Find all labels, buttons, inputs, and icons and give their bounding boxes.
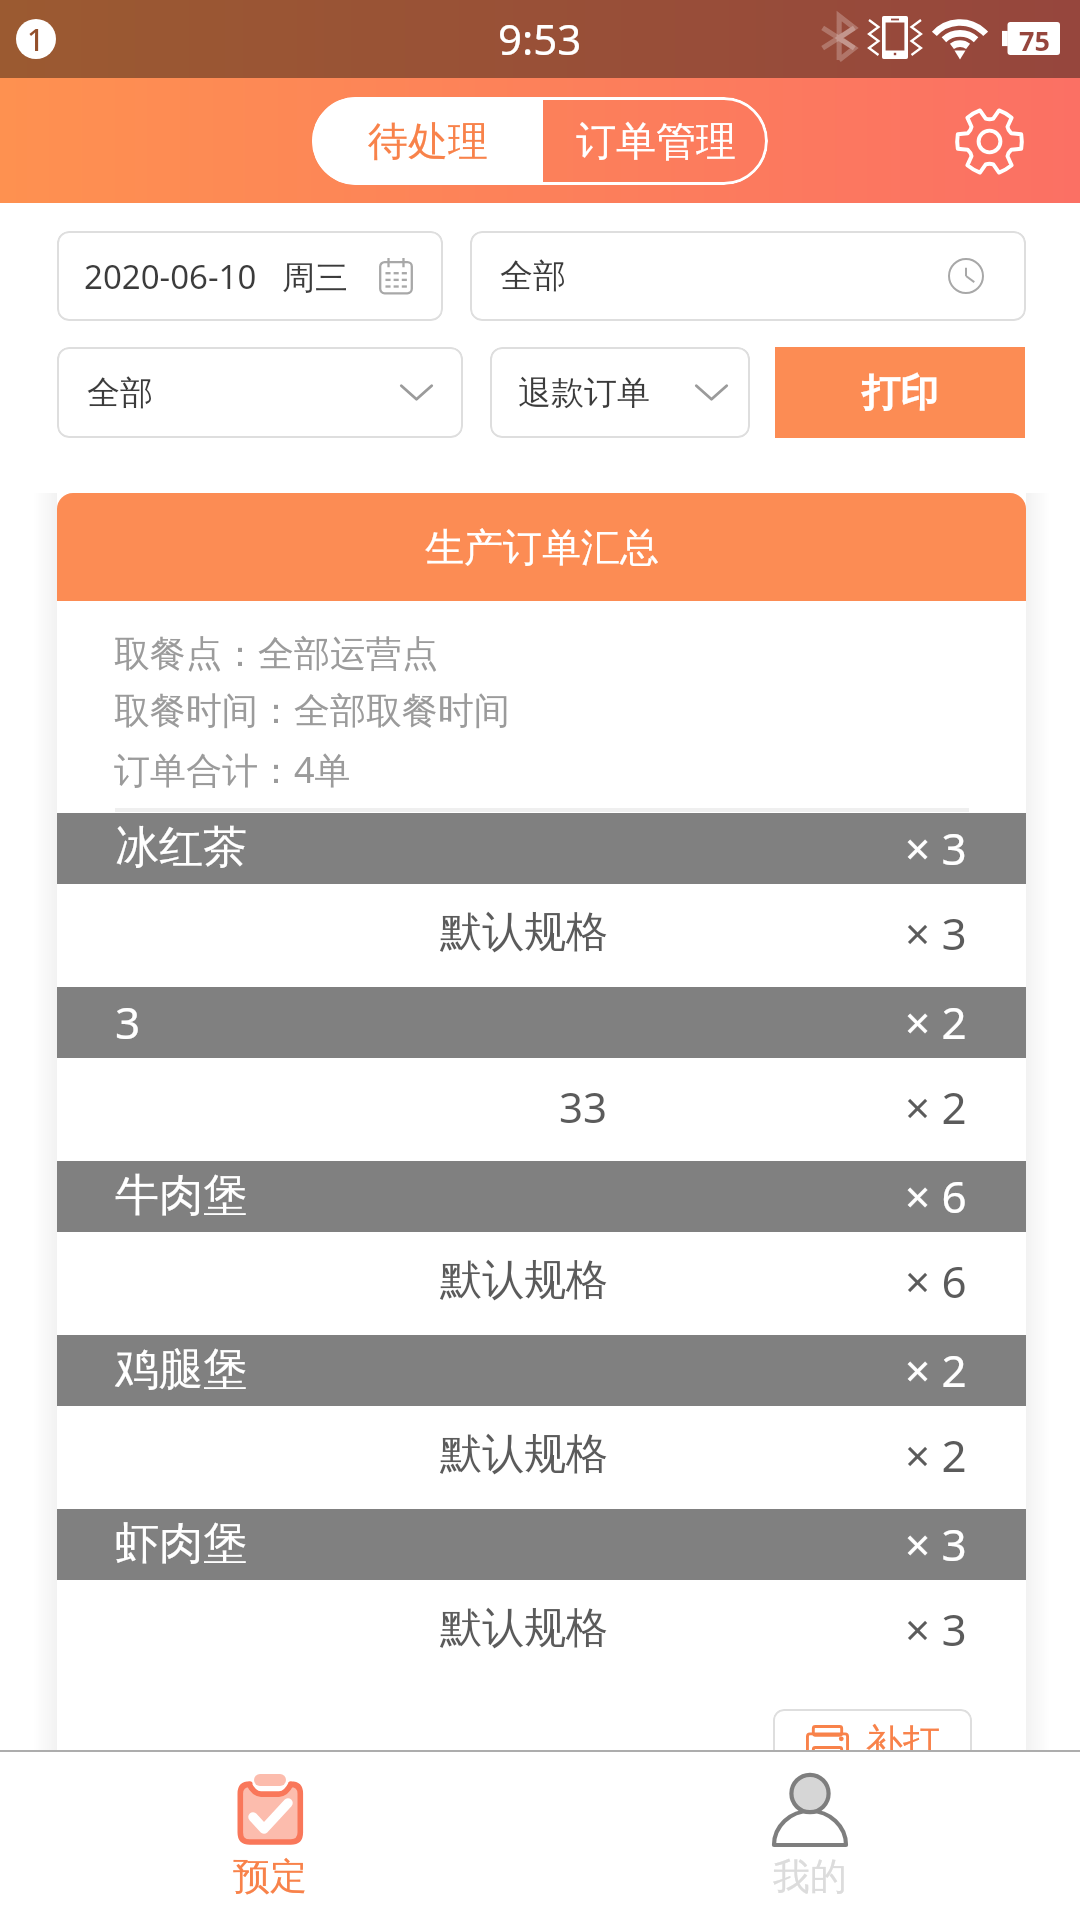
button[interactable]: 虾肉堡 xyxy=(57,1509,1026,1580)
staticText: 订单管理 xyxy=(576,116,736,166)
staticText: × 3 xyxy=(905,1514,967,1574)
button[interactable]: 补打 xyxy=(773,1709,972,1752)
staticText: × 2 xyxy=(905,1340,967,1400)
staticText: 3 xyxy=(115,992,141,1052)
staticText: 打印 xyxy=(862,369,938,417)
staticText: × 3 xyxy=(905,818,967,878)
staticText: × 3 xyxy=(905,1599,967,1659)
staticText: 牛肉堡 xyxy=(115,1168,247,1223)
staticText: × 6 xyxy=(905,1251,967,1311)
staticText: 全部 xyxy=(87,372,153,414)
button[interactable]: 订单管理 xyxy=(543,97,768,185)
staticText: 默认规格 xyxy=(440,1428,608,1481)
staticText: 订单合计：4单 xyxy=(114,745,351,794)
button[interactable]: 待处理 xyxy=(312,97,543,185)
staticText: × 2 xyxy=(905,1077,967,1137)
staticText: 我的 xyxy=(773,1853,847,1900)
button[interactable]: 预定 xyxy=(0,1752,540,1920)
staticText: 默认规格 xyxy=(440,906,608,959)
button[interactable]: 冰红茶 xyxy=(57,813,1026,884)
staticText: 全部 xyxy=(500,255,566,297)
staticText: × 6 xyxy=(905,1166,967,1226)
staticText: 鸡腿堡 xyxy=(115,1342,247,1397)
button[interactable]: 我的 xyxy=(540,1752,1080,1920)
staticText: 75 xyxy=(1019,22,1050,55)
staticText: 取餐点：全部运营点 xyxy=(114,631,438,676)
staticText: 默认规格 xyxy=(440,1254,608,1307)
staticText: 2020-06-10 周三 xyxy=(84,254,348,299)
staticText: × 2 xyxy=(905,992,967,1052)
staticText: 待处理 xyxy=(368,116,488,166)
staticText: 生产订单汇总 xyxy=(425,523,659,572)
staticText: 33 xyxy=(559,1078,608,1135)
button[interactable]: 3 xyxy=(57,987,1026,1058)
staticText: 取餐时间：全部取餐时间 xyxy=(114,688,510,733)
staticText: 9:53 xyxy=(498,10,582,67)
staticText: 冰红茶 xyxy=(115,820,247,875)
staticText: × 2 xyxy=(905,1425,967,1485)
staticText: 退款订单 xyxy=(518,372,650,414)
button[interactable]: 打印 xyxy=(775,347,1025,438)
button[interactable]: 全部 xyxy=(470,231,1026,321)
button[interactable]: Settings xyxy=(946,98,1033,185)
button[interactable]: 退款订单 xyxy=(490,347,750,438)
button[interactable]: 2020-06-10 周三 xyxy=(57,231,443,321)
button[interactable]: 鸡腿堡 xyxy=(57,1335,1026,1406)
staticText: 虾肉堡 xyxy=(115,1516,247,1571)
button[interactable]: 牛肉堡 xyxy=(57,1161,1026,1232)
staticText: 1 xyxy=(27,19,45,59)
staticText: × 3 xyxy=(905,903,967,963)
button[interactable]: 全部 xyxy=(57,347,463,438)
staticText: 预定 xyxy=(233,1853,307,1900)
staticText: 补打 xyxy=(866,1719,940,1752)
staticText: 默认规格 xyxy=(440,1602,608,1655)
